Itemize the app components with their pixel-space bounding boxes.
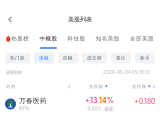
button[interactable]: 涨跌幅 <box>89 84 108 89</box>
staticText: 盘前 <box>105 107 113 111</box>
staticText: 万春医药 <box>19 97 47 105</box>
staticText: BYSI <box>19 106 29 111</box>
button[interactable]: 跌幅 <box>58 52 78 63</box>
button[interactable]: 涨跌额 <box>132 84 151 89</box>
staticText: 科技股 <box>68 35 86 42</box>
staticText: 涨幅 <box>39 55 49 61</box>
staticText: 跌幅 <box>63 55 73 61</box>
button[interactable]: More columns <box>152 84 156 88</box>
button[interactable]: 知名美股 <box>96 35 120 49</box>
staticText: 涨跌幅 <box>89 84 104 89</box>
button[interactable]: 涨幅 <box>34 52 54 63</box>
staticText: 热门股 <box>10 55 25 61</box>
staticText: 换手 <box>140 55 150 61</box>
button[interactable]: 换手 <box>135 52 155 63</box>
staticText: 更新时间 <box>6 70 22 75</box>
button[interactable]: 中概股 <box>39 35 57 49</box>
staticText: 热股榜 <box>11 35 29 42</box>
button[interactable]: 成交额 <box>82 52 107 63</box>
staticText: 0.00% <box>88 106 102 112</box>
button[interactable]: 量比 <box>111 52 131 63</box>
staticText: 知名美股 <box>96 35 120 42</box>
button[interactable]: Previous columns <box>67 84 72 88</box>
button[interactable]: 科技股 <box>68 35 86 49</box>
staticText: 量比 <box>116 55 126 61</box>
staticText: 名称 <box>6 84 16 89</box>
staticText: +13.14% <box>85 96 114 105</box>
staticText: 美股列表 <box>68 16 92 23</box>
button[interactable]: Back <box>0 9 21 25</box>
staticText: 2026-05-04 05:19:31 <box>103 70 150 75</box>
staticText: +0.180 <box>134 97 155 106</box>
button[interactable]: 全部美股 <box>130 35 154 49</box>
button[interactable]: 热股榜 <box>6 35 29 49</box>
button[interactable]: 万春医药 <box>0 94 160 114</box>
staticText: 中概股 <box>39 35 57 42</box>
staticText: 全部美股 <box>130 35 154 42</box>
staticText: 成交额 <box>87 55 102 61</box>
staticText: 涨跌额 <box>132 84 147 89</box>
button[interactable]: 热门股 <box>5 52 30 63</box>
